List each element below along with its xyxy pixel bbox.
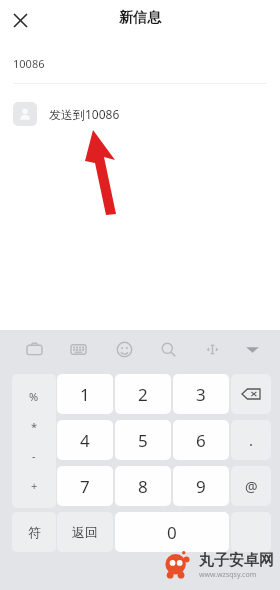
staticText: 8 xyxy=(138,475,148,498)
staticText: 3 xyxy=(196,383,206,406)
staticText: 0 xyxy=(167,521,177,544)
staticText: 9 xyxy=(196,475,206,498)
button[interactable]: @ xyxy=(231,466,271,506)
button[interactable]: Backspace xyxy=(231,374,271,414)
button[interactable]: 5 xyxy=(115,420,171,460)
staticText: - xyxy=(32,448,36,463)
button[interactable]: Search xyxy=(155,336,181,362)
button[interactable]: . xyxy=(231,420,271,460)
button[interactable]: 1 xyxy=(57,374,113,414)
button[interactable]: 0 xyxy=(115,512,229,552)
button[interactable]: Hide keyboard xyxy=(239,336,265,362)
button[interactable]: 8 xyxy=(115,466,171,506)
staticText: 6 xyxy=(196,429,206,452)
staticText: * xyxy=(31,419,38,434)
button[interactable]: 7 xyxy=(57,466,113,506)
staticText: www.wzsqsy.com xyxy=(199,570,257,580)
button[interactable]: 9 xyxy=(173,466,229,506)
button[interactable]: 4 xyxy=(57,420,113,460)
staticText: 7 xyxy=(80,475,90,498)
button[interactable]: Emoji xyxy=(111,336,137,362)
staticText: 2 xyxy=(138,383,148,406)
staticText: 返回 xyxy=(72,524,98,540)
staticText: + xyxy=(31,478,38,493)
staticText: 10086 xyxy=(13,56,45,71)
button[interactable]: Toolbox xyxy=(21,336,47,362)
staticText: 5 xyxy=(138,429,148,452)
button[interactable]: Close xyxy=(8,8,32,32)
button[interactable]: 3 xyxy=(173,374,229,414)
staticText: 新信息 xyxy=(119,9,161,27)
button[interactable]: % xyxy=(12,374,56,508)
button[interactable]: 2 xyxy=(115,374,171,414)
button[interactable]: 符 xyxy=(12,512,56,552)
button[interactable]: 6 xyxy=(173,420,229,460)
button[interactable]: 返回 xyxy=(57,512,113,552)
staticText: 丸子安卓网 xyxy=(199,551,274,570)
staticText: % xyxy=(29,389,39,404)
staticText: . xyxy=(249,430,254,450)
staticText: @ xyxy=(245,477,258,496)
staticText: 符 xyxy=(28,524,41,540)
button[interactable]: Move cursor xyxy=(199,336,225,362)
button[interactable]: 发送到10086 xyxy=(0,96,280,132)
staticText: 发送到10086 xyxy=(49,106,120,122)
staticText: 1 xyxy=(80,383,90,406)
button[interactable]: Keyboard xyxy=(65,336,91,362)
staticText: 4 xyxy=(80,429,90,452)
